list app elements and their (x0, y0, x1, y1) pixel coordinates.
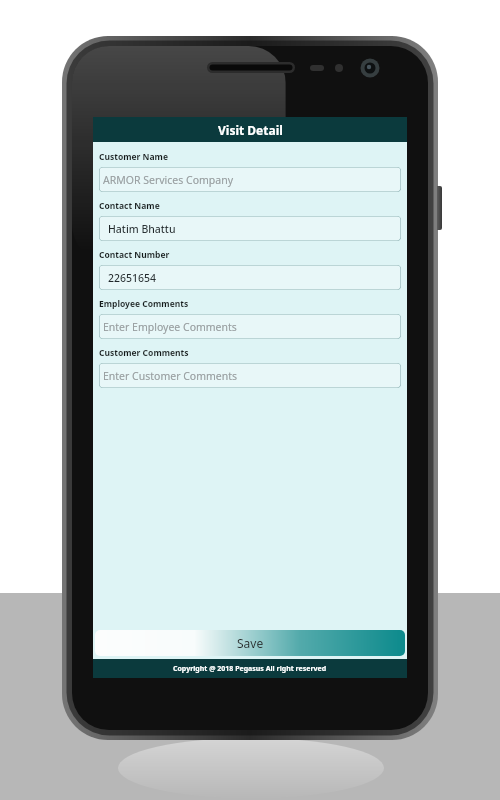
button[interactable]: 22651654 (99, 265, 401, 290)
staticText: Customer Name (99, 151, 168, 163)
staticText: Hatim Bhattu (108, 222, 176, 236)
button[interactable]: Enter Employee Comments (99, 314, 401, 339)
staticText: Employee Comments (99, 298, 189, 310)
staticText: Save (237, 635, 264, 651)
button[interactable]: Enter Customer Comments (99, 363, 401, 388)
staticText: 22651654 (108, 271, 157, 285)
button[interactable]: Hatim Bhattu (99, 216, 401, 241)
staticText: Contact Number (99, 249, 170, 261)
staticText: Customer Comments (99, 347, 189, 359)
staticText: ARMOR Services Company (103, 173, 234, 187)
staticText: Enter Customer Comments (103, 369, 238, 383)
staticText: Contact Name (99, 200, 160, 212)
button[interactable]: Save (95, 630, 405, 656)
staticText: Copyright @ 2018 Pegasus All right reser… (173, 664, 327, 674)
button[interactable]: ARMOR Services Company (99, 167, 401, 192)
staticText: Enter Employee Comments (103, 320, 237, 334)
staticText: Visit Detail (218, 122, 283, 138)
